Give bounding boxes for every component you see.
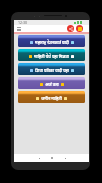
button[interactable]: Back [36, 155, 42, 161]
staticText: महाराष्ट्र रेशनकार्ड यादी [35, 40, 69, 45]
button[interactable]: Recents [62, 155, 68, 161]
button[interactable]: माहिती येथे पहा मिळवा [18, 49, 85, 61]
staticText: माहिती येथे पहा मिळवा [34, 54, 69, 59]
button[interactable]: अर्ज करा [18, 77, 85, 89]
button[interactable]: शिधा पत्रिका यादी पहा [18, 63, 85, 75]
button[interactable]: महाराष्ट्र रेशनकार्ड यादी [18, 35, 85, 47]
button[interactable]: जमीन माहिती [18, 91, 85, 103]
button[interactable]: Share [67, 25, 74, 32]
button[interactable]: Menu [17, 27, 21, 31]
staticText: 12:30 [18, 20, 27, 25]
staticText: शिधा पत्रिका यादी पहा [35, 68, 69, 73]
button[interactable]: Rate app [76, 25, 83, 32]
button[interactable]: Home [49, 155, 55, 161]
staticText: जमीन माहिती [41, 96, 62, 101]
staticText: अर्ज करा [45, 82, 59, 87]
